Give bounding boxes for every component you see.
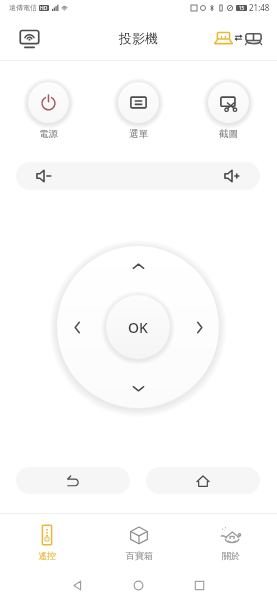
button[interactable]: Volume up [138, 162, 260, 190]
staticText: 百寶箱 [126, 550, 153, 561]
button[interactable]: Switch device [214, 28, 263, 47]
button[interactable]: 截圖 [204, 78, 253, 140]
staticText: OK [128, 318, 148, 337]
button[interactable]: Up [115, 246, 161, 286]
staticText: 截圖 [219, 128, 238, 140]
button[interactable]: Connected device [13, 22, 45, 54]
staticText: 21:48 [249, 2, 270, 13]
other: Recents [194, 580, 205, 591]
staticText: HD [40, 5, 48, 11]
button[interactable]: Home [146, 467, 260, 494]
staticText: 選單 [129, 128, 148, 140]
button[interactable]: Back [16, 467, 130, 494]
staticText: 投影機 [119, 30, 158, 46]
button[interactable]: Right [179, 304, 219, 350]
other: Home [133, 580, 144, 591]
button[interactable]: OK [106, 295, 170, 359]
staticText: 關於 [222, 550, 240, 561]
button[interactable]: Volume down [16, 162, 138, 190]
staticText: 遙控 [38, 550, 56, 561]
button[interactable]: 選單 [114, 78, 163, 140]
button[interactable]: 關於 [185, 524, 277, 561]
other: Back [72, 580, 83, 591]
staticText: 電源 [39, 128, 58, 140]
button[interactable]: Left [57, 304, 97, 350]
button[interactable]: 電源 [24, 78, 73, 140]
button[interactable]: 遙控 [0, 524, 93, 561]
staticText: 遠傳電信 [9, 3, 37, 12]
button[interactable]: Down [115, 368, 161, 408]
button[interactable]: 百寶箱 [93, 524, 185, 561]
staticText: 15 [239, 5, 245, 11]
